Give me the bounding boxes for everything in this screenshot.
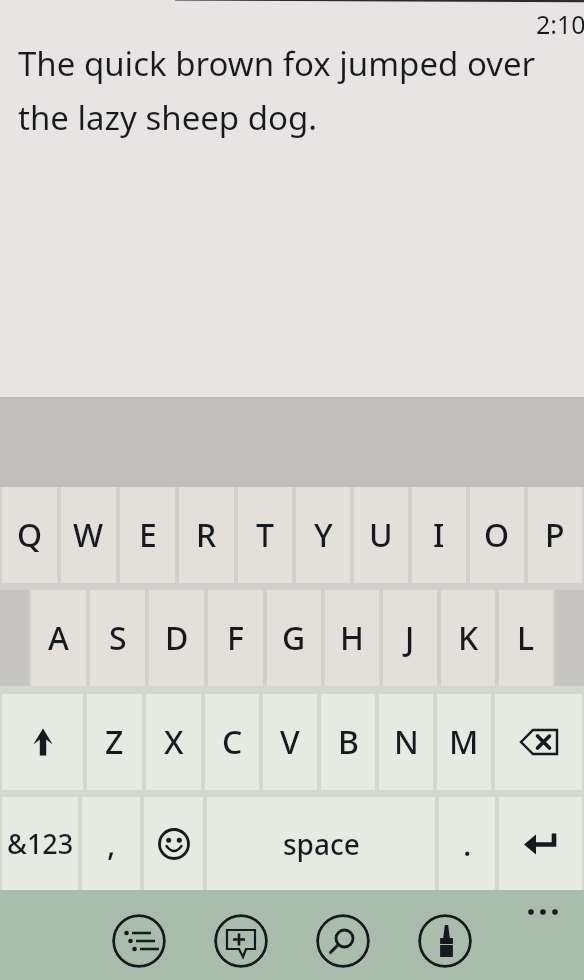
staticText: J — [405, 616, 415, 660]
staticText: G — [282, 616, 306, 660]
staticText: S — [109, 616, 127, 660]
button[interactable]: Suggestions — [112, 914, 166, 968]
button[interactable]: V — [263, 694, 317, 790]
staticText: The quick brown fox jumped over the lazy… — [18, 41, 546, 140]
button[interactable]: , — [82, 797, 140, 890]
staticText: , — [107, 823, 116, 865]
staticText: X — [164, 720, 184, 764]
staticText: M — [449, 720, 479, 764]
button[interactable]: Z — [87, 694, 142, 790]
staticText: Y — [314, 513, 333, 557]
button[interactable]: . — [439, 797, 495, 890]
button[interactable]: W — [61, 487, 116, 583]
staticText: R — [196, 513, 217, 557]
staticText: O — [484, 513, 510, 557]
button[interactable]: More options — [518, 899, 568, 925]
button[interactable]: Backspace — [495, 694, 582, 790]
button[interactable]: T — [238, 487, 292, 583]
button[interactable]: D — [149, 590, 204, 686]
button[interactable]: R — [179, 487, 234, 583]
button[interactable]: Q — [2, 487, 57, 583]
button[interactable]: B — [321, 694, 375, 790]
staticText: I — [433, 513, 445, 557]
staticText: Z — [105, 720, 124, 764]
staticText: 2:10 — [536, 7, 584, 41]
staticText: N — [394, 720, 419, 764]
staticText: T — [256, 513, 274, 557]
button[interactable]: K — [441, 590, 495, 686]
staticText: space — [283, 825, 360, 863]
staticText: B — [338, 720, 359, 764]
button[interactable]: P — [528, 487, 582, 583]
button[interactable]: Search — [316, 914, 370, 968]
button[interactable]: Add note — [214, 914, 268, 968]
button[interactable]: Y — [296, 487, 350, 583]
staticText: U — [369, 513, 393, 557]
button[interactable]: E — [120, 487, 175, 583]
button[interactable]: H — [325, 590, 379, 686]
button[interactable]: C — [205, 694, 259, 790]
button[interactable]: A — [31, 590, 86, 686]
button[interactable]: space — [207, 797, 435, 890]
staticText: &123 — [7, 825, 74, 862]
staticText: F — [227, 616, 244, 660]
staticText: A — [48, 616, 69, 660]
button[interactable]: F — [208, 590, 263, 686]
staticText: P — [545, 513, 565, 557]
button[interactable]: J — [383, 590, 437, 686]
button[interactable]: M — [437, 694, 491, 790]
button[interactable]: Emoji — [144, 797, 203, 890]
staticText: W — [73, 513, 104, 557]
button[interactable]: S — [90, 590, 145, 686]
staticText: Q — [17, 513, 43, 557]
button[interactable]: X — [146, 694, 201, 790]
staticText: D — [165, 616, 189, 660]
button[interactable]: N — [379, 694, 433, 790]
staticText: L — [517, 616, 535, 660]
button[interactable]: L — [499, 590, 553, 686]
button[interactable]: O — [470, 487, 524, 583]
button[interactable]: Enter — [499, 797, 582, 890]
button[interactable]: Ink — [418, 914, 472, 968]
button[interactable]: U — [354, 487, 408, 583]
button[interactable]: I — [412, 487, 466, 583]
staticText: . — [463, 823, 472, 865]
staticText: K — [458, 616, 479, 660]
button[interactable]: Shift — [2, 694, 83, 790]
staticText: V — [280, 720, 300, 764]
staticText: C — [222, 720, 243, 764]
button[interactable]: G — [267, 590, 321, 686]
staticText: H — [340, 616, 364, 660]
button[interactable]: &123 — [2, 797, 78, 890]
staticText: E — [139, 513, 157, 557]
